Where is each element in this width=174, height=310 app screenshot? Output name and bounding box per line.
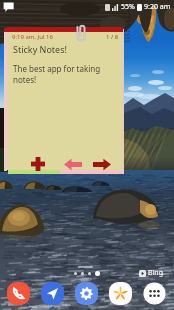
button[interactable]: Next note: [91, 155, 113, 173]
staticText: Sticky Notes!: [13, 43, 67, 55]
button[interactable]: 9:19 am, Jul 16: [7, 27, 123, 170]
button[interactable]: Previous note: [62, 155, 84, 173]
button[interactable]: Navigation: [41, 282, 64, 305]
staticText: 9:20 am: [144, 2, 171, 12]
button[interactable]: Apps: [143, 282, 166, 305]
staticText: The best app for taking notes!: [13, 63, 101, 85]
button[interactable]: Gallery: [109, 282, 132, 305]
staticText: 55%: [121, 2, 135, 12]
button[interactable]: Add note: [29, 155, 47, 173]
staticText: 9:19 am, Jul 16: [12, 33, 53, 41]
button[interactable]: Settings: [75, 282, 98, 305]
staticText: 1 / 8: [106, 33, 119, 41]
button[interactable]: Phone: [7, 282, 30, 305]
staticText: Bing: [148, 268, 163, 278]
